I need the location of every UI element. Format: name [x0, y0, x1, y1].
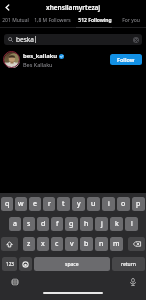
- button[interactable]: p: [132, 197, 145, 211]
- button[interactable]: space: [34, 257, 110, 271]
- button[interactable]: b: [80, 237, 93, 251]
- button[interactable]: return: [112, 257, 145, 271]
- button[interactable]: l: [125, 217, 138, 231]
- staticText: d: [41, 219, 46, 229]
- button[interactable]: v: [65, 237, 78, 251]
- staticText: 512 Following: [78, 17, 112, 24]
- staticText: l: [131, 219, 133, 229]
- staticText: e: [33, 199, 37, 209]
- button[interactable]: q: [1, 197, 13, 211]
- staticText: Bes Kallaku: [23, 61, 53, 68]
- button[interactable]: t: [57, 197, 70, 211]
- staticText: Follow: [117, 56, 135, 63]
- staticText: 201 Mutual: [2, 17, 29, 24]
- button[interactable]: o: [117, 197, 130, 211]
- staticText: f: [56, 219, 59, 229]
- staticText: r: [48, 199, 51, 209]
- staticText: bes_kallaku: [23, 52, 58, 60]
- staticText: a: [13, 219, 17, 229]
- staticText: 1,8 M Followers: [34, 17, 71, 24]
- staticText: w: [18, 199, 24, 209]
- button[interactable]: y: [72, 197, 85, 211]
- button[interactable]: k: [110, 217, 123, 231]
- button[interactable]: e: [29, 197, 41, 211]
- button[interactable]: h: [80, 217, 93, 231]
- button[interactable]: n: [95, 237, 108, 251]
- button[interactable]: w: [15, 197, 27, 211]
- button[interactable]: beska: [4, 34, 142, 45]
- staticText: z: [27, 239, 31, 249]
- button[interactable]: a: [9, 217, 21, 231]
- button[interactable]: g: [65, 217, 78, 231]
- staticText: t: [62, 199, 65, 209]
- staticText: i: [108, 199, 110, 209]
- button[interactable]: d: [37, 217, 49, 231]
- button[interactable]: 201 Mutual: [0, 17, 31, 24]
- button[interactable]: j: [95, 217, 108, 231]
- staticText: return: [121, 261, 136, 268]
- button[interactable]: Back: [2, 2, 13, 13]
- button[interactable]: Emoji: [19, 257, 32, 271]
- staticText: space: [65, 261, 79, 268]
- staticText: c: [55, 239, 59, 249]
- button[interactable]: r: [43, 197, 55, 211]
- staticText: u: [91, 199, 96, 209]
- button[interactable]: x: [37, 237, 49, 251]
- staticText: s: [27, 219, 31, 229]
- button[interactable]: z: [23, 237, 35, 251]
- staticText: m: [113, 239, 120, 249]
- button[interactable]: Clear text: [133, 37, 139, 43]
- button[interactable]: Backspace: [128, 237, 145, 251]
- staticText: n: [99, 239, 104, 249]
- staticText: xhensilamyrtezaj: [46, 3, 101, 12]
- button[interactable]: u: [87, 197, 100, 211]
- staticText: q: [5, 199, 10, 209]
- button[interactable]: c: [51, 237, 63, 251]
- button[interactable]: Change keyboard language: [11, 278, 19, 286]
- button[interactable]: i: [102, 197, 115, 211]
- staticText: 123: [6, 261, 14, 267]
- button[interactable]: 123: [2, 257, 17, 271]
- staticText: beska: [16, 35, 34, 44]
- button[interactable]: m: [110, 237, 123, 251]
- staticText: p: [136, 199, 141, 209]
- staticText: j: [101, 219, 103, 229]
- staticText: g: [69, 219, 74, 229]
- staticText: x: [41, 239, 45, 249]
- button[interactable]: f: [51, 217, 63, 231]
- button[interactable]: 1,8 M Followers: [31, 17, 74, 24]
- button[interactable]: 512 Following: [74, 17, 115, 24]
- button[interactable]: Voice input: [129, 278, 137, 286]
- staticText: v: [70, 239, 74, 249]
- staticText: y: [77, 199, 81, 209]
- staticText: For you: [122, 17, 140, 24]
- staticText: o: [121, 199, 126, 209]
- button[interactable]: For you: [115, 17, 146, 24]
- button[interactable]: bes_kallaku: [0, 49, 146, 70]
- button[interactable]: Follow: [110, 54, 142, 65]
- staticText: b: [84, 239, 89, 249]
- staticText: h: [84, 219, 89, 229]
- button[interactable]: Shift: [1, 237, 18, 251]
- staticText: k: [115, 219, 119, 229]
- button[interactable]: s: [23, 217, 35, 231]
